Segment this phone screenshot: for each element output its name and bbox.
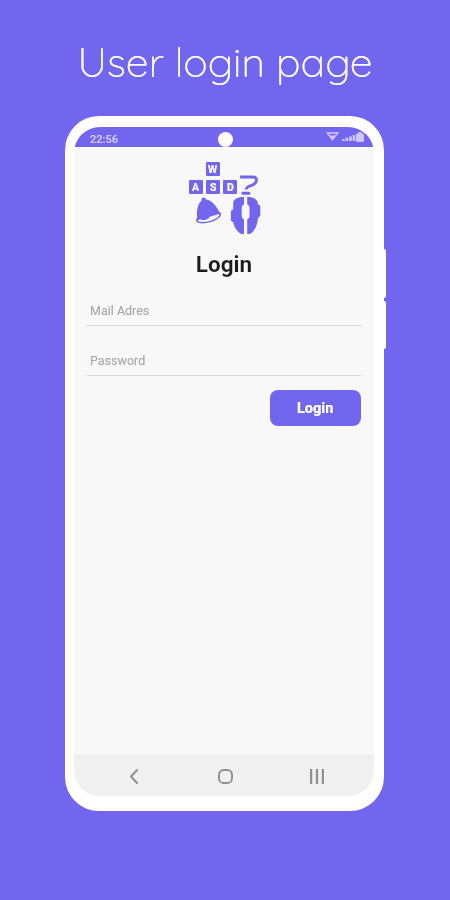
staticText: W (208, 163, 218, 175)
staticText: S (210, 181, 217, 193)
staticText: Mail Adres (90, 303, 150, 318)
button[interactable]: Home (207, 758, 243, 794)
staticText: D (227, 181, 234, 193)
button[interactable]: Password (74, 353, 374, 383)
staticText: 22:56 (90, 133, 118, 146)
staticText: Password (90, 353, 146, 368)
staticText: Login (74, 251, 374, 277)
button[interactable]: Mail Adres (74, 303, 374, 333)
button[interactable]: Back (116, 758, 152, 794)
staticText: A (192, 181, 200, 193)
staticText: Login (297, 400, 334, 417)
staticText: User login page (0, 36, 450, 87)
button[interactable]: Login (270, 390, 361, 426)
button[interactable]: Recent apps (299, 758, 335, 794)
